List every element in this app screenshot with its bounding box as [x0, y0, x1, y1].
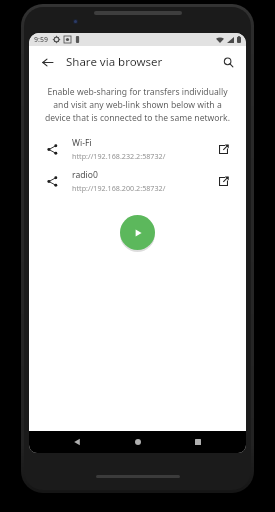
button[interactable]: Wi-Fi: [29, 133, 246, 165]
staticText: Enable web-sharing for transfers individ…: [42, 86, 233, 123]
staticText: Wi-Fi: [72, 137, 92, 149]
staticText: http://192.168.200.2:58732/: [72, 183, 166, 193]
staticText: http://192.168.232.2:58732/: [72, 151, 166, 161]
staticText: 9:59: [34, 35, 48, 45]
button[interactable]: Recent apps: [185, 431, 211, 453]
button[interactable]: Search: [216, 50, 240, 74]
button[interactable]: Back: [35, 50, 59, 74]
button[interactable]: radio0: [29, 165, 246, 197]
button[interactable]: Open in browser: [213, 171, 233, 191]
staticText: Share via browser: [66, 54, 163, 70]
staticText: radio0: [72, 169, 98, 181]
button[interactable]: Open in browser: [213, 139, 233, 159]
button[interactable]: Start sharing: [120, 215, 155, 250]
button[interactable]: Back: [64, 431, 90, 453]
button[interactable]: Home: [125, 431, 151, 453]
